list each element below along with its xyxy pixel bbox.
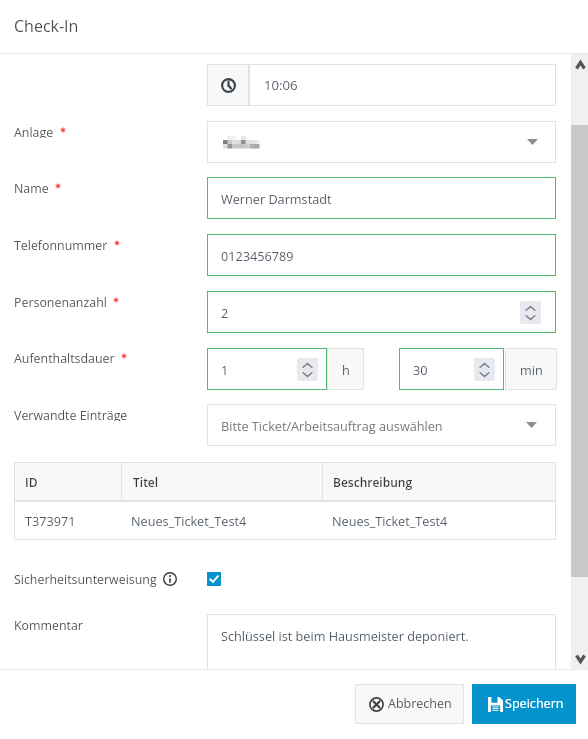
button[interactable]: 1 — [207, 348, 327, 390]
staticText: Werner Darmstadt — [221, 190, 332, 207]
staticText: Telefonnummer — [14, 237, 108, 251]
staticText: Titel — [133, 474, 159, 490]
staticText: Abbrechen — [388, 695, 452, 712]
button[interactable]: 2 — [207, 291, 556, 333]
staticText: h — [342, 361, 350, 378]
staticText: T373971 — [25, 512, 121, 529]
button[interactable]: Increase or decrease value — [297, 358, 318, 381]
button[interactable]: Speichern — [472, 684, 576, 724]
button[interactable]: Scroll up — [571, 54, 588, 76]
button[interactable]: Pick time — [207, 64, 249, 106]
staticText: Bitte Ticket/Arbeitsauftrag auswählen — [221, 417, 443, 434]
button[interactable]: Scroll down — [571, 647, 588, 669]
button[interactable]: Increase or decrease value — [474, 358, 495, 381]
staticText: Speichern — [505, 695, 564, 712]
button[interactable]: Abbrechen — [355, 684, 464, 724]
button[interactable]: T373971 — [14, 501, 556, 540]
button[interactable]: Increase or decrease value — [520, 301, 541, 324]
staticText: Name — [14, 180, 49, 194]
staticText: ID — [25, 474, 38, 490]
button[interactable]: 10:06 — [249, 64, 556, 106]
staticText: Schlüssel ist beim Hausmeister deponiert… — [221, 627, 469, 644]
button[interactable]: More information — [163, 572, 177, 586]
staticText: 10:06 — [264, 76, 298, 94]
staticText: Aufenthaltsdauer — [14, 350, 115, 364]
button[interactable] — [207, 121, 556, 163]
staticText: 2 — [221, 304, 229, 321]
staticText: Beschreibung — [333, 474, 413, 490]
staticText: Sicherheitsunterweisung — [14, 571, 157, 588]
staticText: 30 — [413, 361, 428, 378]
staticText: Neues_Ticket_Test4 — [131, 512, 322, 529]
button[interactable]: Bitte Ticket/Arbeitsauftrag auswählen — [207, 404, 556, 446]
staticText: Check-In — [14, 15, 79, 37]
button[interactable]: Schlüssel ist beim Hausmeister deponiert… — [207, 614, 556, 682]
button[interactable]: Werner Darmstadt — [207, 177, 556, 219]
staticText: Kommentar — [14, 617, 83, 631]
staticText: Personenanzahl — [14, 294, 107, 308]
staticText: 0123456789 — [221, 247, 294, 264]
staticText: Neues_Ticket_Test4 — [332, 512, 448, 529]
button[interactable]: 30 — [399, 348, 504, 390]
staticText: 1 — [221, 361, 229, 378]
button[interactable]: Sicherheitsunterweisung checkbox — [207, 572, 221, 586]
button[interactable]: 0123456789 — [207, 234, 556, 276]
staticText: min — [520, 361, 543, 378]
staticText: Anlage — [14, 124, 54, 138]
staticText: Verwandte Einträge — [14, 407, 128, 421]
